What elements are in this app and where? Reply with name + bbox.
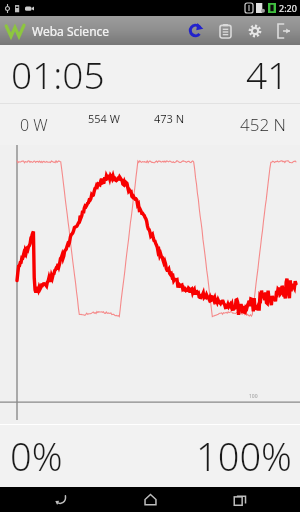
button[interactable]: 0% <box>0 425 300 487</box>
button[interactable]: 0 W <box>0 104 300 145</box>
staticText: 100 <box>249 393 258 400</box>
button[interactable]: 01:05 <box>0 45 300 103</box>
button[interactable]: 100 <box>0 145 300 424</box>
button[interactable]: Settings <box>240 16 270 45</box>
button[interactable]: Home <box>120 487 180 512</box>
button[interactable]: Exit <box>270 16 298 45</box>
staticText: 473 N <box>154 111 185 126</box>
staticText: 554 W <box>88 111 120 126</box>
button[interactable]: Recent apps <box>210 487 270 512</box>
staticText: 01:05 <box>11 49 105 99</box>
staticText: 0% <box>10 430 63 482</box>
button[interactable]: Back <box>30 487 90 512</box>
staticText: 41 <box>246 49 289 99</box>
button[interactable]: Records <box>210 16 240 45</box>
staticText: 2:20 <box>279 2 297 14</box>
staticText: Weba Science <box>32 23 110 39</box>
staticText: 0 W <box>20 114 48 136</box>
button[interactable]: Sync <box>180 16 210 45</box>
staticText: 100% <box>196 430 292 482</box>
staticText: 452 N <box>240 113 286 136</box>
